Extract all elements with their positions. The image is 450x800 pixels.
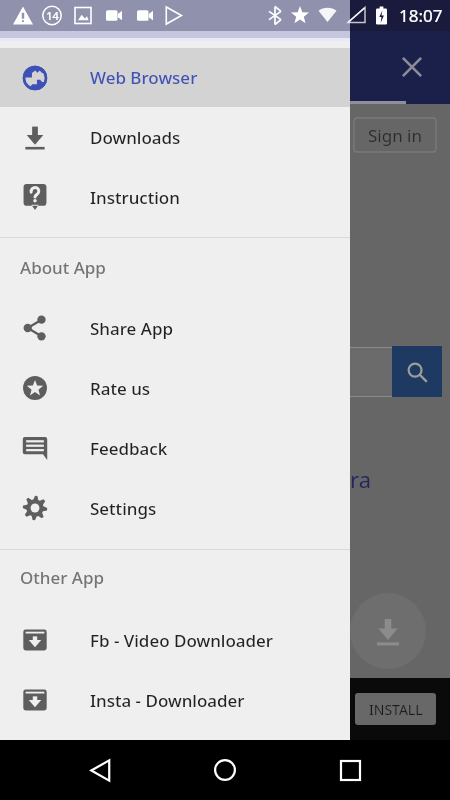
button[interactable]: Web Browser <box>0 48 350 107</box>
staticText: INSTALL <box>369 700 423 719</box>
staticText: Other App <box>20 566 105 589</box>
button[interactable]: Download <box>350 593 426 669</box>
staticText: Rate us <box>90 377 151 400</box>
button[interactable]: Home <box>205 750 245 790</box>
staticText: 14 <box>46 8 59 23</box>
button[interactable]: INSTALL <box>355 693 436 725</box>
staticText: Settings <box>90 497 157 520</box>
button[interactable]: Instruction <box>0 167 350 227</box>
button[interactable]: Share App <box>0 298 350 358</box>
staticText: Insta - Downloader <box>90 689 245 712</box>
button[interactable]: Settings <box>0 478 350 538</box>
button[interactable]: Fb - Video Downloader <box>0 610 350 670</box>
staticText: Web Browser <box>90 66 198 89</box>
staticText: About App <box>20 256 106 279</box>
button[interactable]: Feedback <box>0 418 350 478</box>
button[interactable]: Close <box>400 55 424 79</box>
staticText: 18:07 <box>399 4 443 27</box>
staticText: ra <box>350 464 371 494</box>
staticText: Feedback <box>90 437 168 460</box>
button[interactable]: Back <box>80 750 120 790</box>
staticText: Share App <box>90 317 173 340</box>
staticText: Fb - Video Downloader <box>90 629 274 652</box>
button[interactable]: Insta - Downloader <box>0 670 350 730</box>
button[interactable]: Sign in <box>354 118 436 152</box>
staticText: Downloads <box>90 126 181 149</box>
staticText: Instruction <box>90 186 180 209</box>
button[interactable]: Downloads <box>0 107 350 167</box>
staticText: Sign in <box>368 124 422 147</box>
button[interactable]: Recents <box>330 750 370 790</box>
button[interactable]: Rate us <box>0 358 350 418</box>
button[interactable]: Search <box>392 346 442 397</box>
